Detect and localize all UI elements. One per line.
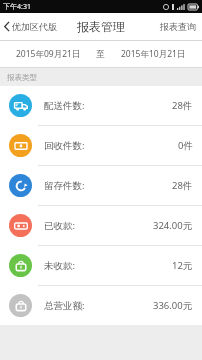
staticText: 0件 bbox=[178, 139, 193, 152]
staticText: 2015年09月21日 bbox=[16, 48, 81, 60]
staticText: 配送件数: bbox=[44, 99, 85, 112]
button[interactable]: 回收件数: bbox=[0, 125, 202, 165]
staticText: 报表管理 bbox=[77, 19, 125, 34]
staticText: 28件 bbox=[172, 99, 193, 112]
staticText: 324.00元 bbox=[153, 219, 193, 232]
button[interactable]: 已收款: bbox=[0, 205, 202, 245]
staticText: 已收款: bbox=[44, 219, 76, 232]
staticText: 336.00元 bbox=[153, 299, 193, 312]
staticText: 报表查询 bbox=[160, 21, 196, 32]
staticText: 回收件数: bbox=[44, 139, 85, 152]
button[interactable]: 总营业额: bbox=[0, 285, 202, 325]
staticText: 至 bbox=[96, 49, 105, 60]
button[interactable]: Back bbox=[0, 16, 63, 37]
staticText: 12元 bbox=[172, 259, 193, 272]
staticText: 28件 bbox=[172, 179, 193, 192]
button[interactable]: 配送件数: bbox=[0, 86, 202, 125]
button[interactable]: 报表查询 bbox=[154, 15, 202, 38]
staticText: 未收款: bbox=[44, 259, 76, 272]
button[interactable]: 留存件数: bbox=[0, 165, 202, 205]
staticText: 下午4:31 bbox=[3, 2, 31, 12]
button[interactable]: 2015年10月21日 bbox=[105, 41, 202, 67]
staticText: 报表类型 bbox=[7, 73, 37, 82]
staticText: 优加区代版 bbox=[12, 21, 57, 32]
staticText: 2015年10月21日 bbox=[121, 48, 186, 60]
staticText: 总营业额: bbox=[44, 299, 85, 312]
button[interactable]: 未收款: bbox=[0, 245, 202, 285]
button[interactable]: 2015年09月21日 bbox=[0, 41, 96, 67]
other: Back bbox=[4, 21, 10, 32]
staticText: 留存件数: bbox=[44, 179, 85, 192]
